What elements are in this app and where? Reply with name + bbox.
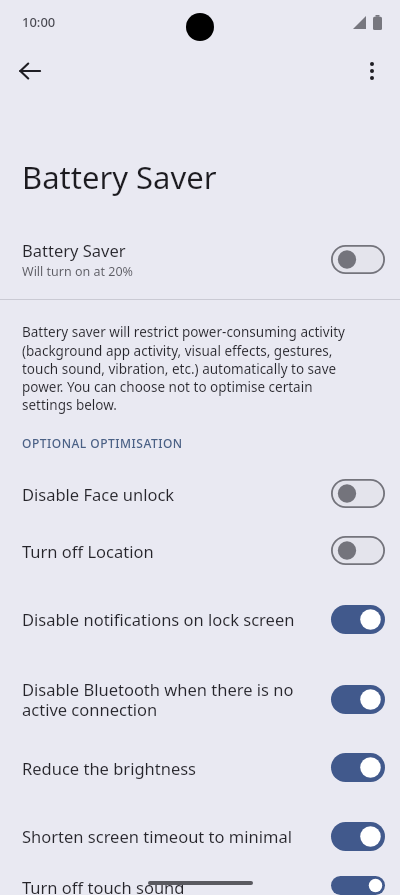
staticText: 10:00 — [22, 13, 56, 31]
button[interactable]: Turn off Location — [0, 522, 400, 579]
button[interactable]: Disable Bluetooth when there is no activ… — [0, 659, 400, 739]
button[interactable]: Battery Saver — [0, 230, 400, 288]
button[interactable]: Back — [8, 49, 52, 93]
staticText: Shorten screen timeout to minimal — [22, 825, 292, 847]
button[interactable]: Reduce the brightness — [0, 739, 400, 796]
button[interactable]: Disable Face unlock — [0, 465, 400, 522]
staticText: Battery Saver — [22, 239, 126, 261]
staticText: Disable Face unlock — [22, 483, 175, 505]
button[interactable]: Disable notifications on lock screen — [0, 579, 400, 659]
staticText: Disable notifications on lock screen — [22, 608, 295, 630]
staticText: Will turn on at 20% — [22, 263, 133, 280]
staticText: OPTIONAL OPTIMISATION — [22, 435, 183, 451]
staticText: Turn off touch sound — [22, 876, 185, 895]
button[interactable]: More options — [350, 49, 394, 93]
staticText: Disable Bluetooth when there is no activ… — [22, 678, 317, 721]
staticText: Turn off Location — [22, 540, 154, 562]
button[interactable]: Turn off touch sound — [0, 876, 400, 895]
staticText: Reduce the brightness — [22, 757, 197, 779]
staticText: Battery saver will restrict power-consum… — [22, 323, 350, 413]
button[interactable]: Shorten screen timeout to minimal — [0, 796, 400, 876]
staticText: Battery Saver — [22, 156, 217, 198]
